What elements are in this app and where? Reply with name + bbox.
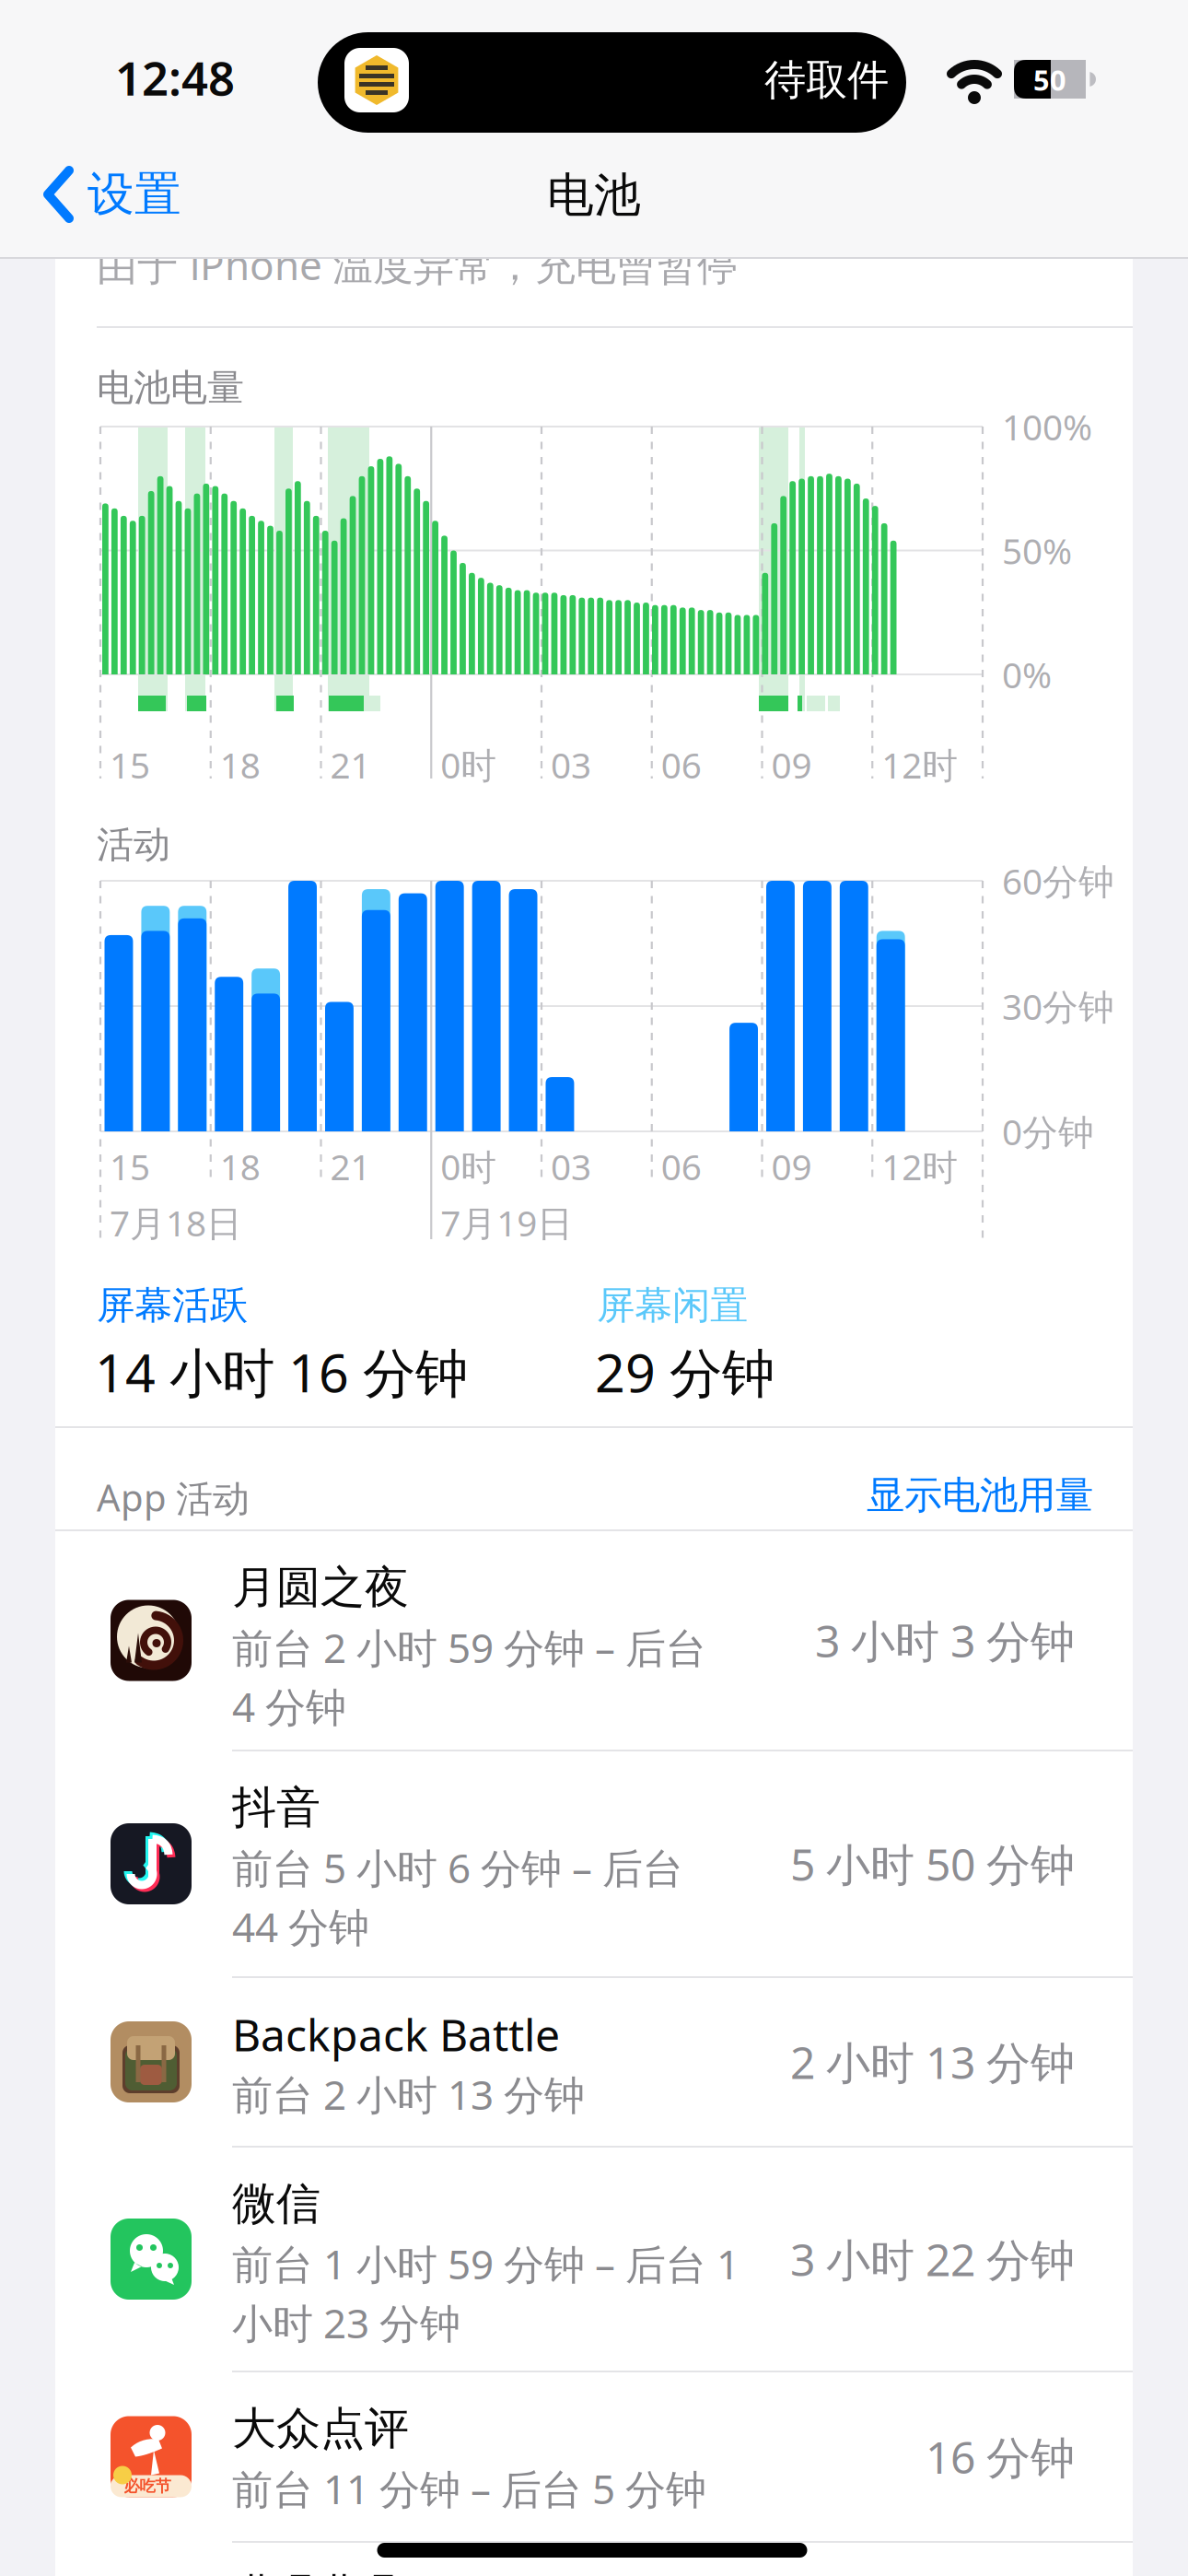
button[interactable]: Backpack Battle: [55, 1977, 1133, 2147]
staticText: 小时 23 分钟: [232, 2296, 460, 2350]
staticText: 微信: [232, 2177, 320, 2231]
staticText: 哔哩哔哩: [232, 2569, 398, 2576]
staticText: 09: [771, 741, 812, 788]
staticText: 前台 1 小时 59 分钟 – 后台 1: [232, 2237, 740, 2291]
staticText: 7月19日: [440, 1199, 573, 1246]
button[interactable]: 必吃节: [55, 2371, 1133, 2542]
staticText: 06: [661, 1143, 702, 1190]
staticText: 100%: [1002, 403, 1092, 450]
staticText: 3 小时 3 分钟: [815, 1611, 1075, 1670]
button[interactable]: 返回设置: [43, 166, 181, 223]
staticText: 设置: [87, 166, 181, 223]
staticText: 7月18日: [110, 1199, 242, 1246]
staticText: 0时: [440, 1143, 497, 1190]
staticText: 16 分钟: [926, 2427, 1075, 2486]
staticText: 60分钟: [1002, 857, 1114, 904]
staticText: 29 分钟: [595, 1337, 775, 1407]
staticText: 21: [330, 741, 371, 788]
staticText: 活动: [97, 822, 170, 867]
staticText: 06: [661, 741, 702, 788]
staticText: 0分钟: [1002, 1108, 1094, 1155]
staticText: 15: [110, 741, 150, 788]
staticText: 5 小时 50 分钟: [790, 1834, 1075, 1893]
staticText: 50%: [1002, 527, 1072, 574]
staticText: 18: [220, 1143, 260, 1190]
staticText: 4 分钟: [232, 1679, 346, 1733]
button[interactable]: 微信: [55, 2147, 1133, 2371]
staticText: 15: [110, 1143, 150, 1190]
staticText: 21: [330, 1143, 371, 1190]
staticText: 30分钟: [1002, 982, 1114, 1030]
staticText: 03: [551, 741, 591, 788]
button[interactable]: 显示电池用量: [867, 1472, 1093, 1519]
staticText: 03: [551, 1143, 591, 1190]
staticText: App 活动: [97, 1473, 250, 1522]
staticText: 抖音: [232, 1780, 320, 1835]
staticText: 09: [771, 1143, 812, 1190]
staticText: 电池电量: [97, 365, 244, 410]
staticText: 由于 iPhone 温度异常，充电曾暂停: [97, 238, 738, 291]
staticText: 12时: [882, 741, 958, 788]
staticText: 0%: [1002, 651, 1052, 698]
staticText: 大众点评: [232, 2401, 409, 2456]
staticText: 电池: [547, 167, 641, 224]
staticText: 50: [1033, 61, 1066, 98]
staticText: 12时: [882, 1143, 958, 1190]
staticText: 前台 2 小时 59 分钟 – 后台: [232, 1620, 706, 1674]
staticText: 12:48: [115, 46, 235, 108]
staticText: 44 分钟: [232, 1900, 369, 1953]
staticText: 月圆之夜: [232, 1560, 409, 1615]
button[interactable]: 抖音: [55, 1751, 1133, 1977]
staticText: 显示电池用量: [867, 1472, 1093, 1519]
staticText: 屏幕闲置: [597, 1282, 748, 1329]
staticText: 14 小时 16 分钟: [95, 1337, 468, 1407]
staticText: 0时: [440, 741, 497, 788]
staticText: 前台 11 分钟 – 后台 5 分钟: [232, 2462, 706, 2515]
staticText: 待取件: [764, 55, 889, 106]
staticText: 前台 5 小时 6 分钟 – 后台: [232, 1841, 683, 1894]
staticText: 2 小时 13 分钟: [790, 2033, 1075, 2091]
button[interactable]: 月圆之夜: [55, 1530, 1133, 1751]
staticText: Backpack Battle: [232, 2005, 560, 2064]
staticText: 18: [220, 741, 260, 788]
staticText: 屏幕活跃: [97, 1282, 248, 1329]
staticText: 前台 2 小时 13 分钟: [232, 2067, 585, 2121]
staticText: 3 小时 22 分钟: [790, 2230, 1075, 2288]
staticText: 必吃节: [124, 2476, 171, 2496]
